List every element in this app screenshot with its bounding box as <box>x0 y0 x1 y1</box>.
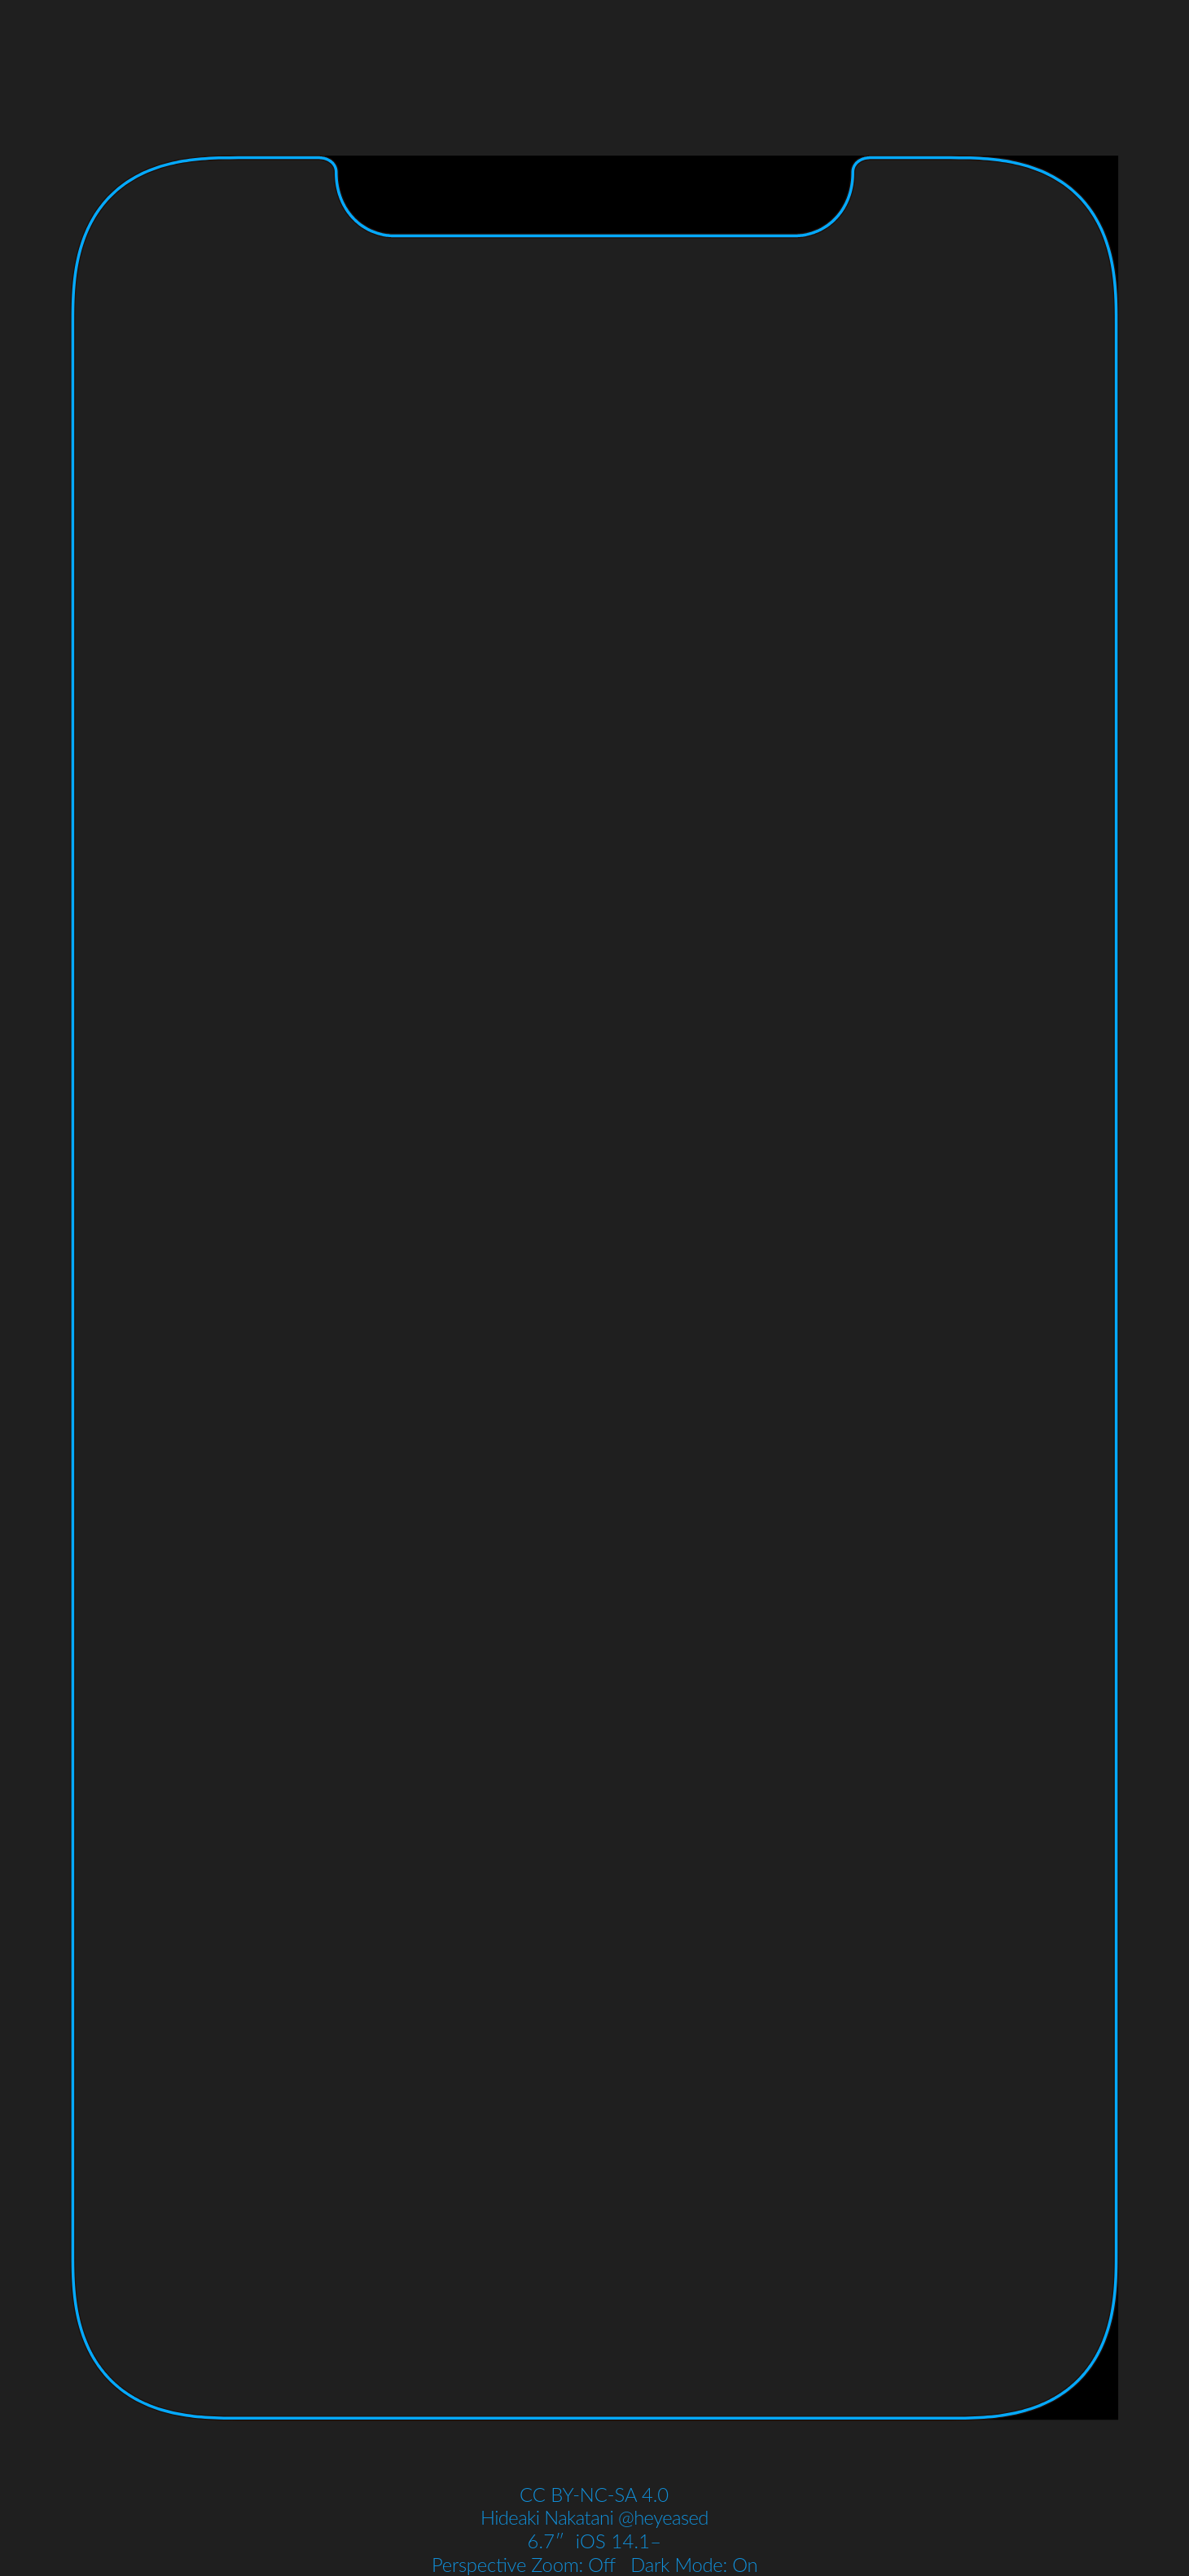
button[interactable]: CC BY-NC-SA 4.0 <box>520 2484 669 2503</box>
button[interactable]: Hideaki Nakatani @heyeased <box>480 2508 709 2527</box>
